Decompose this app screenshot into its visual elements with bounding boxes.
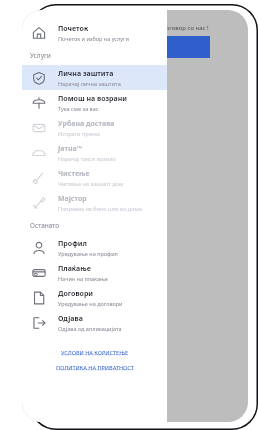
staticText: Јатна™ [58,144,83,154]
staticText: Одјава од апликацијата [58,325,122,332]
button[interactable] [162,36,210,58]
staticText: Чистење на вашиот дом [58,180,124,187]
button[interactable]: Лична заштита [22,65,167,90]
staticText: договор со нас ! [162,24,209,32]
button[interactable]: ПОЛИТИКА НА ПРИВАТНОСТ [22,364,167,371]
button[interactable]: Чистење [22,165,167,190]
staticText: Тука сме за вас [58,105,99,112]
staticText: Нарачај лична заштита [58,80,121,87]
staticText: Плаќање [58,264,91,274]
staticText: Урбана достава [58,119,115,129]
staticText: Договори [58,289,94,299]
staticText: УСЛОВИ НА КОРИСТЕЊЕ [61,349,128,356]
staticText: ПОЛИТИКА НА ПРИВАТНОСТ [56,364,134,371]
staticText: Мајстор [58,194,87,204]
staticText: Уредување на профил [58,250,118,257]
staticText: Чистење [58,169,90,179]
button[interactable]: Урбана достава [22,115,167,140]
button[interactable]: Јатна™ [22,140,167,165]
button[interactable]: Помош на возрани [22,90,167,115]
staticText: Почеток [58,24,89,34]
button[interactable]: Мајстор [22,190,167,215]
staticText: Испрати пратка [58,130,101,137]
button[interactable]: Плаќање [22,260,167,285]
staticText: Уредување на договори [58,300,123,307]
button[interactable]: Профил [22,235,167,260]
button[interactable]: Одјава [22,310,167,335]
staticText: Профил [58,239,87,249]
staticText: Останато [30,221,60,230]
staticText: Начин на плаќање [58,275,108,282]
staticText: Нарачај такси возило [58,155,116,162]
staticText: Помош на возрани [58,94,128,104]
staticText: Одјава [58,314,83,324]
button[interactable]: Договори [22,285,167,310]
staticText: Услуги [30,51,51,60]
staticText: Лична заштита [58,69,114,79]
staticText: Почеток и избор на услуги [58,35,129,42]
staticText: Поправка на било што во дома [58,205,142,212]
button[interactable]: Почеток [22,20,167,45]
button[interactable]: УСЛОВИ НА КОРИСТЕЊЕ [22,349,167,356]
